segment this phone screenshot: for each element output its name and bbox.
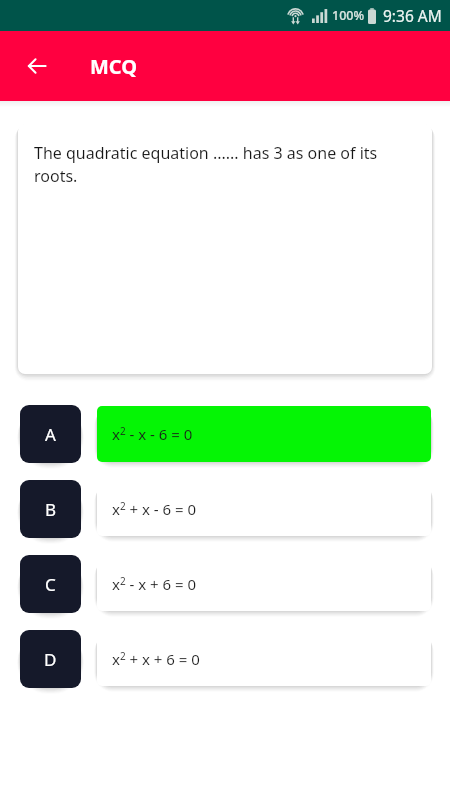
button[interactable]: A <box>20 405 81 463</box>
staticText: 9:36 AM <box>383 5 442 26</box>
button[interactable]: x2 + x - 6 = 0 <box>97 482 431 536</box>
staticText: x2 - x - 6 = 0 <box>112 424 193 444</box>
button[interactable]: D <box>20 630 81 688</box>
button[interactable]: B <box>20 480 81 538</box>
staticText: C <box>45 573 56 596</box>
button[interactable]: C <box>20 555 81 613</box>
button[interactable]: x2 - x + 6 = 0 <box>97 557 431 611</box>
staticText: x2 - x + 6 = 0 <box>112 574 197 594</box>
staticText: D <box>44 648 57 671</box>
staticText: B <box>45 498 57 521</box>
staticText: 100% <box>332 7 365 24</box>
staticText: x2 + x - 6 = 0 <box>112 499 197 519</box>
button[interactable]: x2 + x + 6 = 0 <box>97 632 431 686</box>
staticText: A <box>45 423 56 446</box>
button[interactable]: Back <box>13 42 61 90</box>
button[interactable]: x2 - x - 6 = 0 <box>97 406 431 462</box>
staticText: The quadratic equation ...... has 3 as o… <box>34 142 414 187</box>
staticText: MCQ <box>90 53 138 80</box>
staticText: x2 + x + 6 = 0 <box>112 649 200 669</box>
